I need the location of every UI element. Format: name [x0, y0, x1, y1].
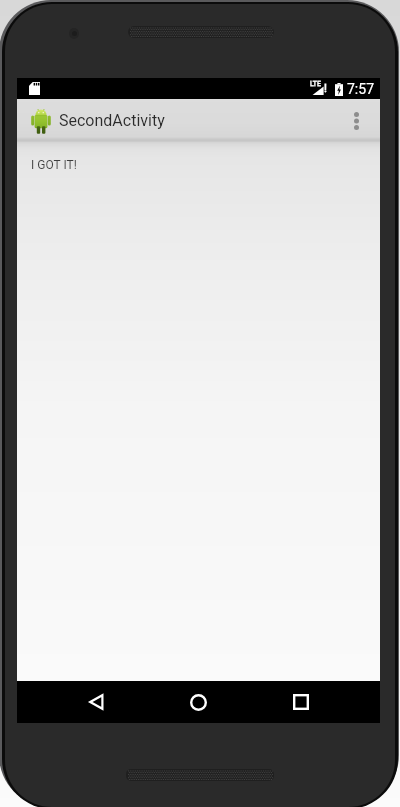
- staticText: !: [324, 82, 327, 95]
- staticText: SecondActivity: [59, 111, 165, 130]
- button[interactable]: Back: [51, 681, 141, 723]
- staticText: LTE: [310, 80, 321, 88]
- button[interactable]: More options: [332, 99, 380, 142]
- staticText: 7:57: [347, 81, 374, 97]
- button[interactable]: Recents: [256, 681, 346, 723]
- button[interactable]: Home: [153, 681, 243, 723]
- staticText: I GOT IT!: [31, 158, 77, 172]
